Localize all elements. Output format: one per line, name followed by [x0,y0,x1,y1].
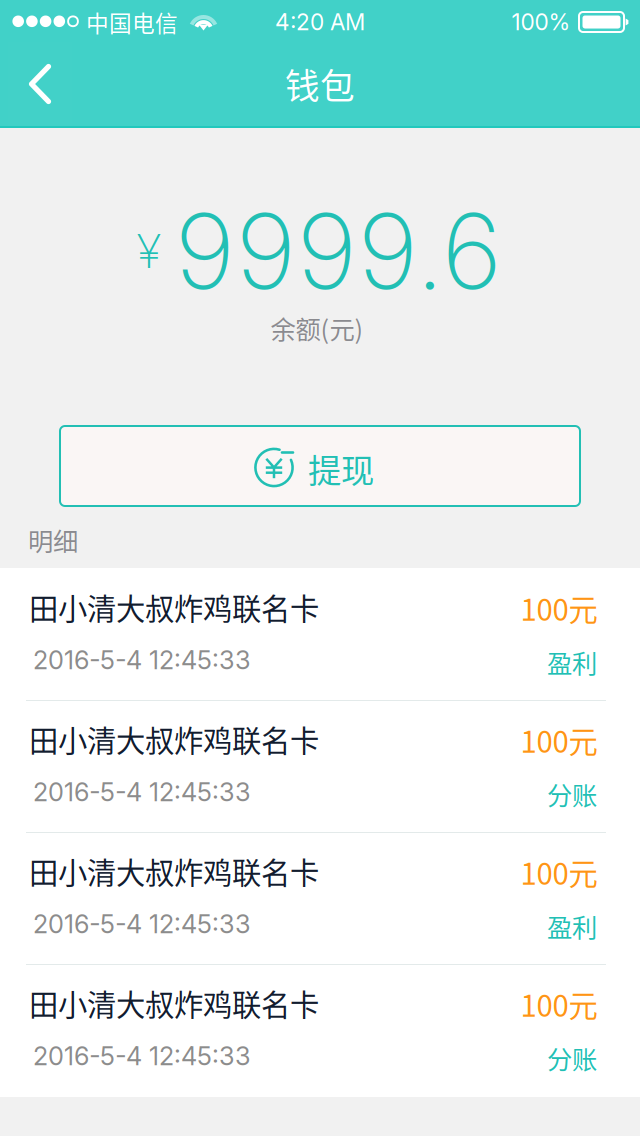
staticText: ¥ [136,223,161,279]
staticText: 4:20 AM [275,8,365,36]
staticText: 100元 [520,851,597,893]
button[interactable]: 田小清大叔炸鸡联名卡 [0,568,640,700]
staticText: 分账 [547,1040,597,1076]
staticText: 余额(元) [270,310,363,346]
button[interactable]: 提现 [60,426,580,506]
staticText: 分账 [547,776,597,812]
staticText: 中国电信 [86,6,178,38]
staticText: 2016-5-4 12:45:33 [33,1041,251,1071]
staticText: 盈利 [547,644,597,680]
staticText: 田小清大叔炸鸡联名卡 [29,586,319,628]
staticText: 2016-5-4 12:45:33 [33,909,251,939]
button[interactable]: 田小清大叔炸鸡联名卡 [0,700,640,832]
staticText: 提现 [308,444,374,493]
staticText: 100元 [520,983,597,1025]
staticText: 盈利 [547,908,597,944]
staticText: 9999.6 [174,188,502,314]
staticText: 2016-5-4 12:45:33 [33,777,251,807]
button[interactable]: 田小清大叔炸鸡联名卡 [0,964,640,1096]
staticText: 田小清大叔炸鸡联名卡 [29,850,319,892]
staticText: 2016-5-4 12:45:33 [33,645,251,675]
staticText: 100元 [520,719,597,761]
button[interactable]: 田小清大叔炸鸡联名卡 [0,832,640,964]
staticText: 钱包 [285,59,355,109]
staticText: 明细 [28,522,78,558]
staticText: 100% [511,8,570,36]
staticText: 田小清大叔炸鸡联名卡 [29,982,319,1024]
button[interactable]: 返回 [8,42,72,126]
staticText: 田小清大叔炸鸡联名卡 [29,718,319,760]
staticText: 100元 [520,587,597,629]
